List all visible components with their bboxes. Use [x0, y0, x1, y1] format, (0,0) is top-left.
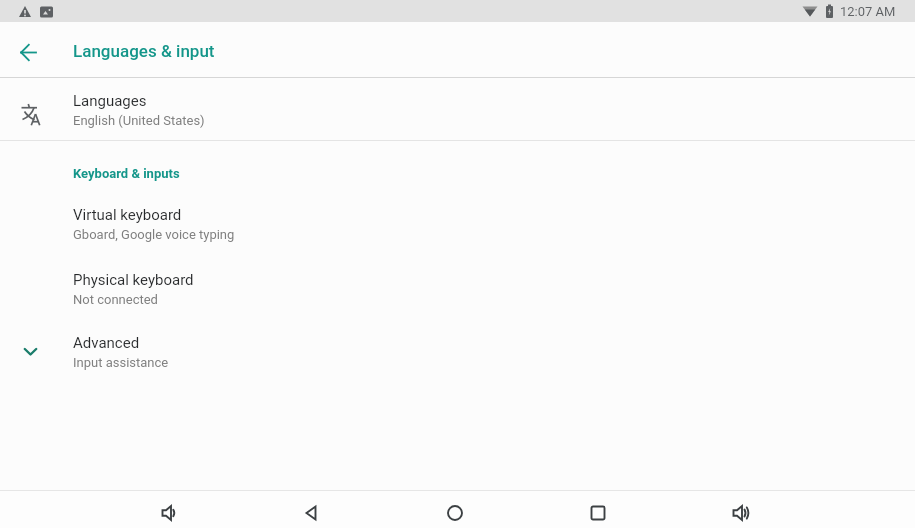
staticText: Input assistance — [73, 355, 169, 370]
button[interactable]: Physical keyboard — [0, 271, 915, 307]
button[interactable] — [4, 28, 52, 76]
staticText: Keyboard & inputs — [73, 166, 180, 181]
staticText: Gboard, Google voice typing — [73, 227, 235, 242]
staticText: Physical keyboard — [73, 271, 194, 289]
staticText: 12:07 AM — [840, 4, 896, 19]
button[interactable] — [580, 495, 616, 528]
button[interactable] — [294, 495, 330, 528]
staticText: Not connected — [73, 292, 158, 307]
button[interactable]: Advanced — [0, 334, 915, 374]
staticText: Languages & input — [73, 41, 215, 61]
button[interactable] — [723, 495, 759, 528]
button[interactable]: Languages — [0, 78, 915, 140]
button[interactable] — [152, 495, 188, 528]
staticText: English (United States) — [73, 113, 205, 128]
staticText: Advanced — [73, 334, 140, 352]
staticText: Virtual keyboard — [73, 206, 182, 224]
staticText: Languages — [73, 92, 147, 110]
button[interactable] — [437, 495, 473, 528]
button[interactable]: Virtual keyboard — [0, 206, 915, 242]
